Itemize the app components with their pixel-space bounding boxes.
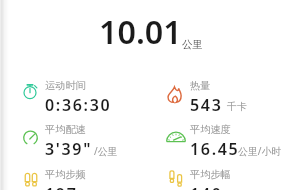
button[interactable] <box>9 117 145 159</box>
other: Duration <box>22 83 38 99</box>
other: Calories <box>166 86 183 103</box>
staticText: 平均速度 <box>190 123 231 136</box>
other: Average pace <box>22 129 39 146</box>
staticText: /公里 <box>94 144 118 158</box>
other: Average speed <box>166 126 186 146</box>
button[interactable] <box>154 72 290 114</box>
button[interactable] <box>154 161 290 190</box>
staticText: 3'39" <box>45 138 93 160</box>
staticText: 平均配速 <box>45 123 86 136</box>
staticText: 543 <box>190 94 223 116</box>
staticText: 0:36:30 <box>45 94 112 116</box>
staticText: 运动时间 <box>45 79 86 92</box>
staticText: 公里 <box>182 38 204 51</box>
staticText: 公里/小时 <box>238 144 282 158</box>
button[interactable] <box>154 117 290 159</box>
button[interactable] <box>9 72 145 114</box>
staticText: 140 <box>190 183 223 190</box>
staticText: 平均步幅 <box>190 168 231 181</box>
button[interactable] <box>9 161 145 190</box>
staticText: 热量 <box>190 79 211 92</box>
staticText: 平均步频 <box>45 168 86 181</box>
staticText: 千卡 <box>227 100 247 112</box>
staticText: 10.01 <box>99 9 182 53</box>
staticText: 16.45 <box>190 138 240 160</box>
other: Average cadence <box>23 171 39 187</box>
other: Average stride <box>168 170 184 186</box>
staticText: 197 <box>45 183 78 190</box>
